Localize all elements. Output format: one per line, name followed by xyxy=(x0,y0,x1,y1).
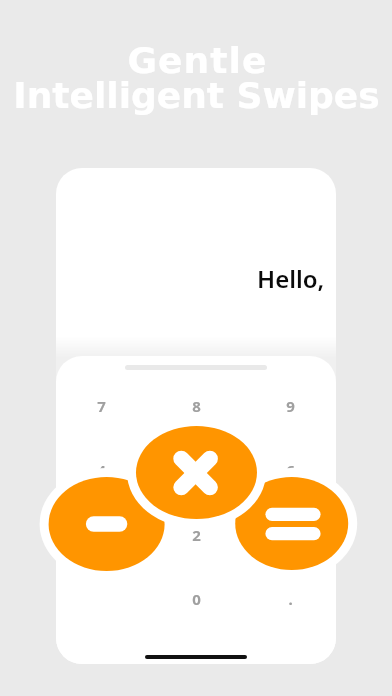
staticText: 0 xyxy=(192,589,201,609)
staticText: 7 xyxy=(97,396,106,416)
staticText: 2 xyxy=(192,525,201,545)
button[interactable]: . xyxy=(262,579,318,619)
staticText: Hello, xyxy=(257,262,325,295)
staticText: 6 xyxy=(286,460,295,480)
button[interactable]: 5 xyxy=(168,450,224,490)
button[interactable]: 0 xyxy=(168,579,224,619)
staticText: 8 xyxy=(192,396,201,416)
button[interactable]: 1 xyxy=(73,515,129,555)
staticText: Intelligent Swipes xyxy=(13,75,380,117)
staticText: 4 xyxy=(97,460,106,480)
button[interactable]: 9 xyxy=(262,386,318,426)
staticText: 9 xyxy=(286,396,295,416)
button[interactable]: 6 xyxy=(262,450,318,490)
staticText: . xyxy=(288,589,293,609)
staticText: 3 xyxy=(286,525,295,545)
button[interactable]: 7 xyxy=(73,386,129,426)
staticText: Gentle xyxy=(127,40,268,82)
staticText: 5 xyxy=(192,460,201,480)
button[interactable]: 3 xyxy=(262,515,318,555)
button[interactable]: 2 xyxy=(168,515,224,555)
button[interactable]: Subtract xyxy=(49,477,165,571)
button[interactable]: Multiply xyxy=(136,426,257,519)
button[interactable]: Equals xyxy=(235,477,348,570)
button[interactable]: 8 xyxy=(168,386,224,426)
button[interactable]: 4 xyxy=(73,450,129,490)
staticText: 1 xyxy=(97,525,106,545)
